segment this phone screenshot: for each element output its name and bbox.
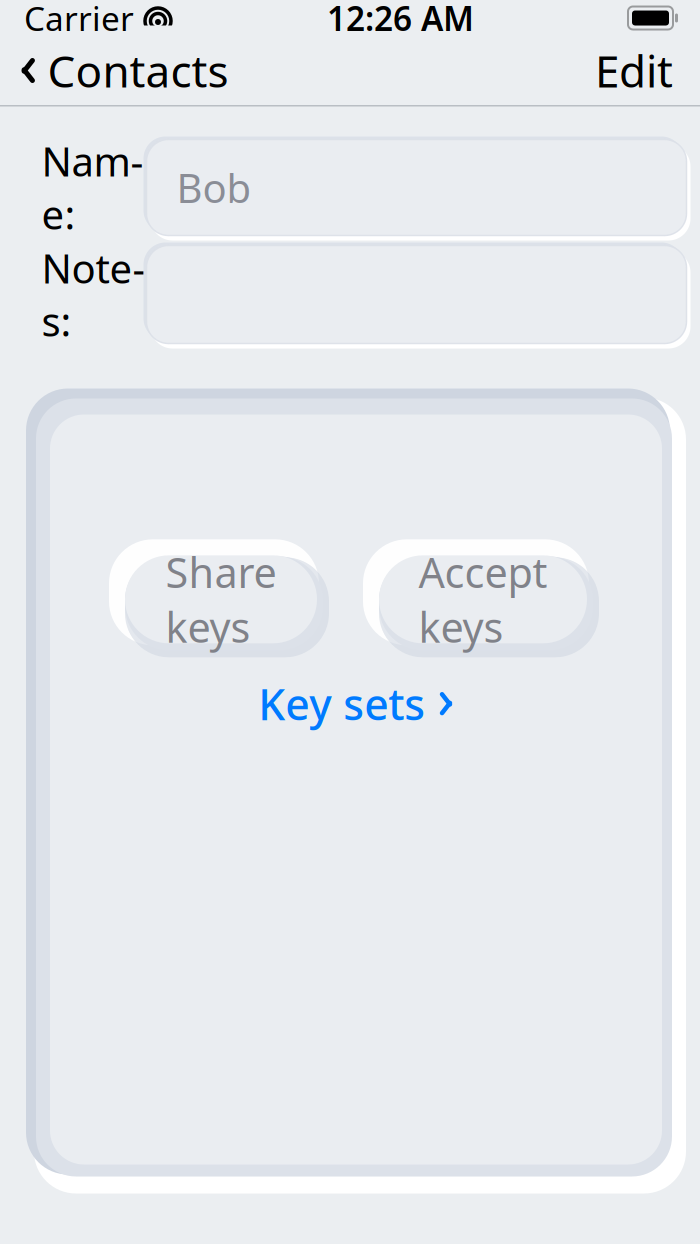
staticText: Name: [41,134,143,241]
staticText: Notes: [41,241,145,348]
button[interactable]: Bob [146,139,686,235]
staticText: Key sets [258,675,425,732]
staticText: Edit [595,41,673,100]
button[interactable]: Contacts [0,33,228,108]
button[interactable]: Accept keys [379,555,587,643]
button[interactable]: Share keys [125,555,317,643]
button[interactable]: Edit [595,33,700,108]
staticText: Share keys [165,544,276,654]
staticText: Contacts [47,41,228,100]
staticText: Bob [176,161,251,214]
staticText: Carrier [24,0,134,40]
button[interactable]: Key sets [240,665,472,742]
staticText: Accept keys [418,544,547,654]
staticText: 12:26 AM [327,0,474,40]
